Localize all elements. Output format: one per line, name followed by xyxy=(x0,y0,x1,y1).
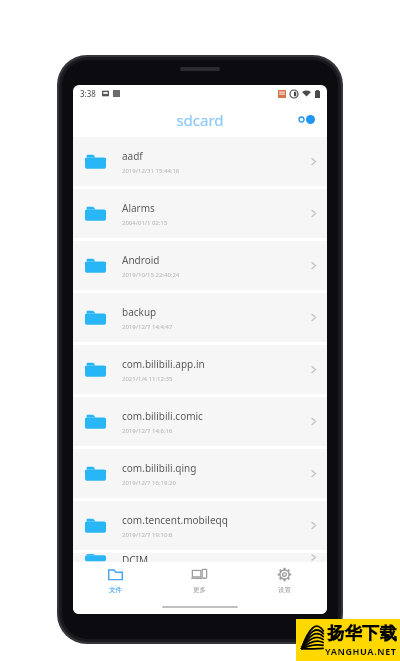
staticText: 2021/1/4 11:12:35 xyxy=(122,375,173,383)
button[interactable]: com.bilibili.qing xyxy=(73,449,327,498)
button[interactable]: com.bilibili.app.in xyxy=(73,345,327,394)
staticText: 2019/12/31 15:44:16 xyxy=(122,167,180,175)
staticText: 2004/01/1 02:15 xyxy=(122,219,168,227)
staticText: sdcard xyxy=(176,110,224,130)
staticText: com.tencent.mobileqq xyxy=(122,513,228,527)
button[interactable]: Android xyxy=(73,241,327,290)
staticText: backup xyxy=(122,305,157,319)
staticText: com.bilibili.comic xyxy=(122,409,203,423)
staticText: 2019/10/15 22:40:24 xyxy=(122,271,180,279)
staticText: com.bilibili.app.in xyxy=(122,357,205,371)
button[interactable]: backup xyxy=(73,293,327,342)
staticText: DCIM xyxy=(122,553,149,562)
staticText: com.bilibili.qing xyxy=(122,461,197,475)
button[interactable]: com.tencent.mobileqq xyxy=(73,501,327,550)
button[interactable]: aadf xyxy=(73,137,327,186)
button[interactable]: DCIM xyxy=(73,553,327,562)
staticText: 2019/12/7 19:10:6 xyxy=(122,531,173,539)
staticText: 文件 xyxy=(109,586,122,594)
staticText: Android xyxy=(122,253,160,267)
staticText: YANGHUA.NET xyxy=(325,645,397,657)
staticText: 扬华下载 xyxy=(327,623,397,644)
button[interactable]: Alarms xyxy=(73,189,327,238)
staticText: 3:38 xyxy=(80,88,96,99)
staticText: 更多 xyxy=(193,586,206,594)
staticText: Alarms xyxy=(122,201,155,215)
staticText: 设置 xyxy=(278,586,291,594)
button[interactable]: com.bilibili.comic xyxy=(73,397,327,446)
staticText: 2019/12/7 14:6:16 xyxy=(122,427,173,435)
staticText: aadf xyxy=(122,149,143,163)
staticText: 2019/12/7 16:19:20 xyxy=(122,479,176,487)
button[interactable]: 更多 xyxy=(157,562,242,600)
button[interactable]: Toggle view xyxy=(295,109,319,130)
button[interactable]: 设置 xyxy=(242,562,327,600)
button[interactable]: 文件 xyxy=(73,562,157,600)
staticText: 2019/12/7 14:4:47 xyxy=(122,323,173,331)
